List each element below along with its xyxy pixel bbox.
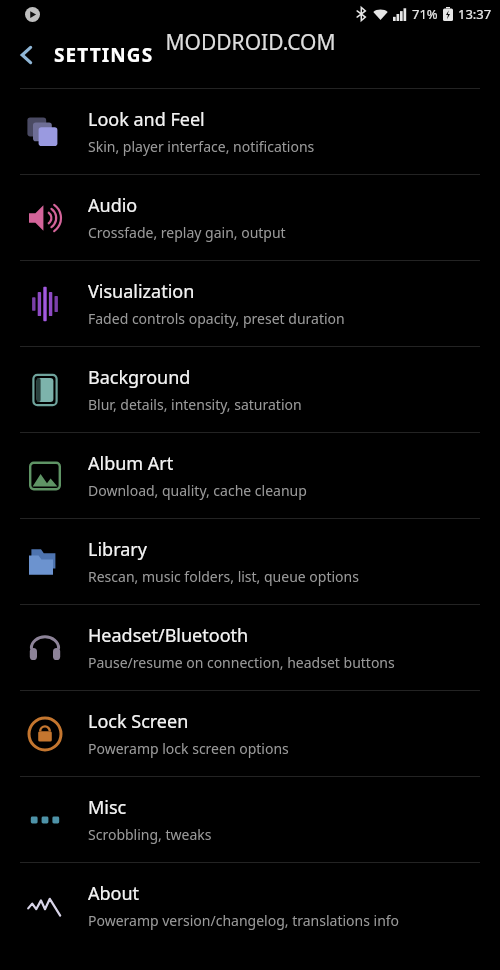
button[interactable]: Audio	[0, 175, 500, 260]
staticText: Skin, player interface, notifications	[88, 137, 315, 156]
button[interactable]: Background	[0, 347, 500, 432]
button[interactable]: Album Art	[0, 433, 500, 518]
staticText: Rescan, music folders, list, queue optio…	[88, 567, 359, 586]
staticText: Album Art	[88, 451, 174, 476]
button[interactable]: Headset/Bluetooth	[0, 605, 500, 690]
staticText: Background	[88, 365, 191, 390]
staticText: Scrobbling, tweaks	[88, 825, 212, 844]
staticText: MODDROID.COM	[165, 28, 336, 57]
staticText: Look and Feel	[88, 107, 205, 132]
staticText: Headset/Bluetooth	[88, 623, 249, 648]
staticText: Blur, details, intensity, saturation	[88, 395, 302, 414]
staticText: Download, quality, cache cleanup	[88, 481, 307, 500]
staticText: About	[88, 881, 140, 906]
staticText: Misc	[88, 795, 127, 820]
button[interactable]: Look and Feel	[0, 89, 500, 174]
staticText: Lock Screen	[88, 709, 189, 734]
button[interactable]: Lock Screen	[0, 691, 500, 776]
button[interactable]: Misc	[0, 777, 500, 862]
staticText: Poweramp lock screen options	[88, 739, 289, 758]
button[interactable]: About	[0, 863, 500, 948]
staticText: Crossfade, replay gain, output	[88, 223, 286, 242]
staticText: 71%	[412, 5, 438, 23]
staticText: Faded controls opacity, preset duration	[88, 309, 345, 328]
button[interactable]: Back	[0, 28, 54, 82]
staticText: 13:37	[458, 5, 492, 23]
staticText: Pause/resume on connection, headset butt…	[88, 653, 395, 672]
staticText: Visualization	[88, 279, 195, 304]
staticText: Library	[88, 537, 147, 562]
staticText: SETTINGS	[54, 42, 154, 68]
staticText: Audio	[88, 193, 138, 218]
button[interactable]: Library	[0, 519, 500, 604]
button[interactable]: Visualization	[0, 261, 500, 346]
staticText: Poweramp version/changelog, translations…	[88, 911, 400, 930]
